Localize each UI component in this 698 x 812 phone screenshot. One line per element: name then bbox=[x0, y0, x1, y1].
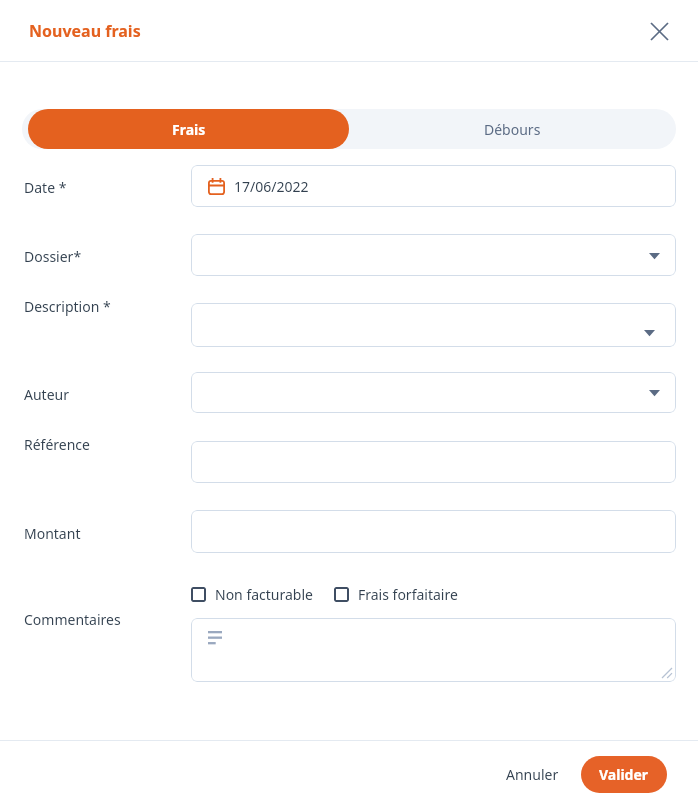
staticText: Date * bbox=[24, 178, 67, 197]
button[interactable]: Ouvrir la liste bbox=[191, 303, 676, 347]
staticText: Commentaires bbox=[24, 610, 121, 629]
button[interactable]: Fermer bbox=[642, 14, 676, 48]
staticText: 17/06/2022 bbox=[234, 177, 309, 196]
staticText: Frais bbox=[172, 120, 206, 139]
button[interactable]: Annuler bbox=[498, 756, 567, 793]
staticText: Débours bbox=[484, 120, 541, 139]
button[interactable]: Non facturable bbox=[191, 585, 313, 604]
other: Ouvrir la liste bbox=[644, 327, 655, 338]
staticText: Référence bbox=[24, 435, 90, 454]
staticText: Dossier* bbox=[24, 247, 82, 266]
button[interactable]: Ouvrir la liste bbox=[191, 372, 676, 413]
button[interactable] bbox=[191, 510, 676, 553]
button[interactable] bbox=[191, 441, 676, 483]
staticText: Non facturable bbox=[215, 585, 313, 604]
button[interactable]: Ouvrir la liste bbox=[191, 234, 676, 276]
staticText: Annuler bbox=[506, 765, 559, 784]
button[interactable]: Frais bbox=[28, 109, 349, 149]
button[interactable]: Valider bbox=[581, 756, 667, 793]
button[interactable]: 17/06/2022 bbox=[191, 165, 676, 207]
button[interactable]: Frais forfaitaire bbox=[334, 585, 458, 604]
other: Ouvrir la liste bbox=[649, 387, 660, 398]
other: Ouvrir la liste bbox=[649, 250, 660, 261]
staticText: Auteur bbox=[24, 385, 69, 404]
staticText: Valider bbox=[599, 765, 649, 784]
button[interactable] bbox=[191, 618, 676, 682]
staticText: Description * bbox=[24, 297, 111, 316]
button[interactable]: Débours bbox=[349, 109, 676, 149]
staticText: Frais forfaitaire bbox=[358, 585, 458, 604]
staticText: Nouveau frais bbox=[29, 20, 141, 42]
staticText: Montant bbox=[24, 524, 81, 543]
